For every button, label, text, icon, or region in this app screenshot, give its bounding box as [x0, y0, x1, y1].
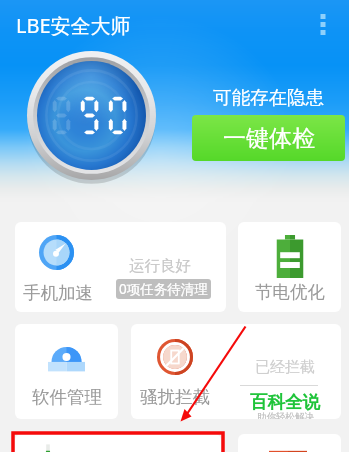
button[interactable]: 骚扰拦截	[131, 324, 218, 419]
staticText: 已经拦截	[255, 358, 315, 377]
staticText: 一键体检	[223, 124, 315, 153]
button[interactable]: 手机加速	[15, 222, 226, 312]
button[interactable]: 骚扰拦截	[131, 324, 341, 419]
button[interactable]: 已经拦截	[231, 324, 341, 419]
button[interactable]: 节电优化	[238, 222, 341, 312]
button[interactable]: More options	[305, 4, 341, 40]
button[interactable]: 一键体检	[192, 115, 345, 161]
button[interactable]	[238, 434, 341, 452]
staticText: 运行良好	[129, 256, 191, 276]
staticText: 节电优化	[255, 281, 325, 303]
staticText: 骚扰拦截	[140, 386, 210, 408]
staticText: 可能存在隐患	[213, 86, 324, 109]
staticText: 手机加速	[23, 282, 93, 304]
staticText: 0项任务待清理	[119, 280, 208, 298]
staticText: 软件管理	[32, 386, 102, 408]
button[interactable]	[15, 434, 221, 452]
staticText: 百科全说	[250, 391, 320, 413]
staticText: 助你轻松解决	[257, 411, 314, 419]
button[interactable]: 软件管理	[15, 324, 118, 419]
staticText: LBE安全大师	[16, 12, 131, 39]
